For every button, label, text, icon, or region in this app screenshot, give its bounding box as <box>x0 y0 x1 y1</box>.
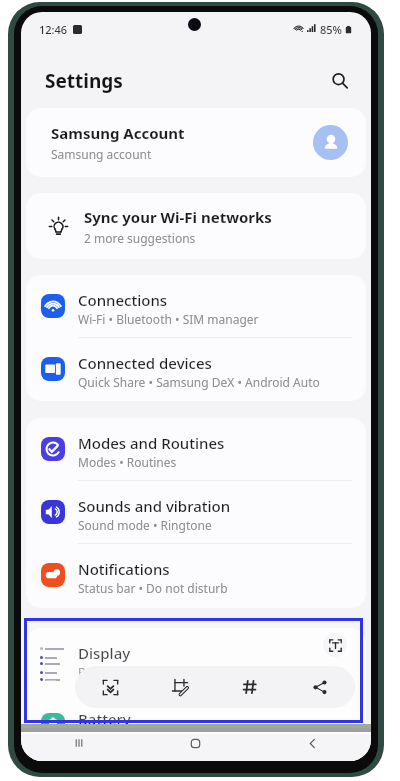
staticText: Sync your Wi-Fi networks <box>84 207 272 227</box>
staticText: Modes • Routines <box>78 454 177 470</box>
button[interactable]: Sync your Wi-Fi networks <box>26 193 366 259</box>
button[interactable]: Display <box>26 628 366 690</box>
button[interactable]: Extract text <box>323 633 347 657</box>
staticText: 2 more suggestions <box>84 230 196 246</box>
staticText: Samsung account <box>51 146 152 162</box>
button[interactable]: Crop and edit <box>145 666 215 708</box>
button[interactable]: Share <box>285 666 355 708</box>
staticText: Notifications <box>78 559 170 579</box>
button[interactable]: Tags <box>215 666 285 708</box>
staticText: Quick Share • Samsung DeX • Android Auto <box>78 374 320 390</box>
button[interactable]: Notifications <box>26 544 366 606</box>
button[interactable]: Connections <box>26 275 366 337</box>
button[interactable]: Home <box>137 734 254 752</box>
staticText: Modes and Routines <box>78 433 225 453</box>
staticText: Wi-Fi • Bluetooth • SIM manager <box>78 311 259 327</box>
button[interactable]: Connected devices <box>26 338 366 400</box>
button[interactable]: Scroll capture <box>75 666 145 708</box>
button[interactable]: Recents <box>21 734 137 752</box>
staticText: Power saving • Charging <box>78 730 216 746</box>
staticText: Connections <box>78 290 168 310</box>
staticText: Status bar • Do not disturb <box>78 580 228 596</box>
staticText: Settings <box>45 68 123 94</box>
staticText: Sound mode • Ringtone <box>78 517 212 533</box>
button[interactable]: Search <box>325 66 355 96</box>
staticText: Samsung Account <box>51 123 185 143</box>
button[interactable]: Modes and Routines <box>26 418 366 480</box>
staticText: Connected devices <box>78 353 212 373</box>
button[interactable]: Back <box>254 734 371 752</box>
staticText: 85% <box>320 22 342 37</box>
button[interactable]: Samsung Account <box>26 108 366 177</box>
button[interactable]: Sounds and vibration <box>26 481 366 543</box>
staticText: Display <box>78 643 131 663</box>
staticText: 12:46 <box>39 22 68 37</box>
button[interactable]: Battery <box>26 691 366 759</box>
staticText: Sounds and vibration <box>78 496 231 516</box>
staticText: Brightness • Eye comfort shield <box>78 664 254 680</box>
staticText: Battery <box>78 709 131 729</box>
